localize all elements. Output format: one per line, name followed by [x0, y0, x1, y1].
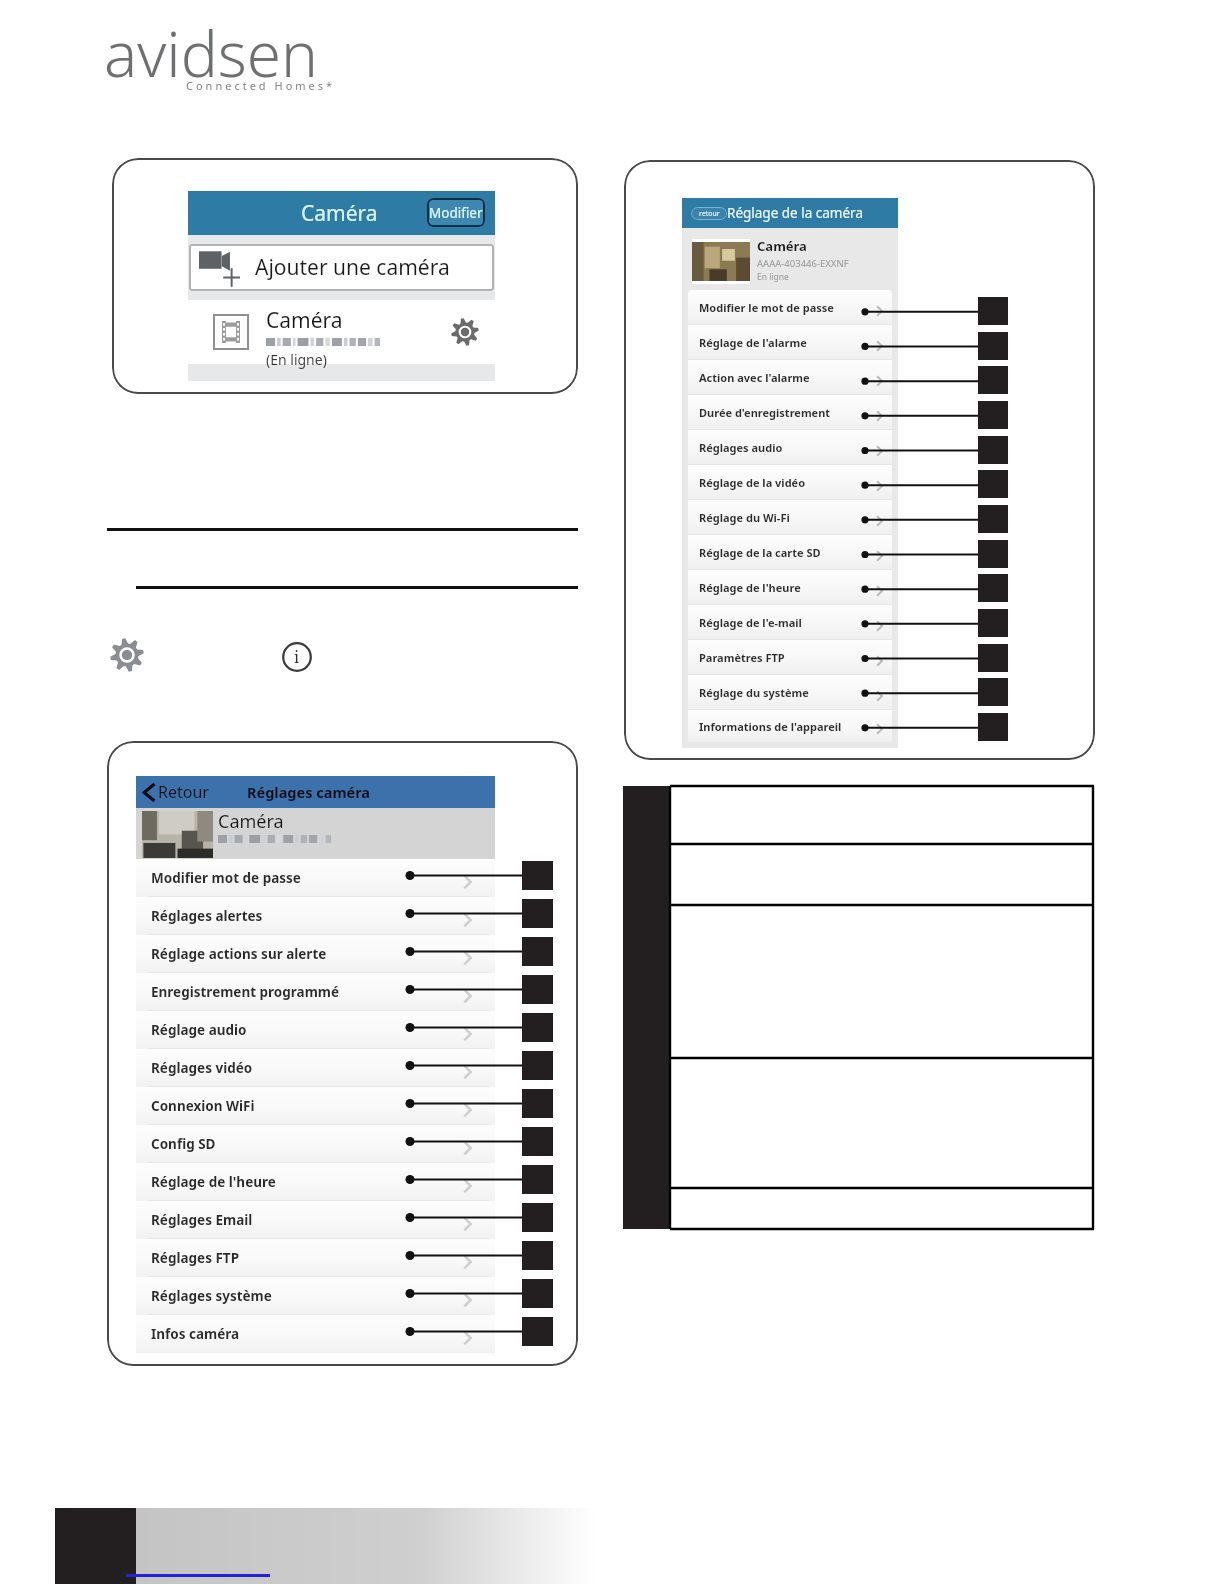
staticText: Réglage du système — [699, 685, 809, 700]
staticText: Réglages système — [151, 1287, 272, 1305]
staticText: Réglages vidéo — [151, 1059, 253, 1077]
staticText: Réglage audio — [151, 1021, 247, 1039]
button[interactable]: Caméra — [188, 300, 495, 364]
button[interactable]: Infos caméra — [136, 1315, 495, 1353]
button[interactable]: Retour — [136, 776, 495, 808]
staticText: Connected Homes* — [186, 78, 336, 93]
button[interactable]: Réglages Email — [136, 1201, 495, 1239]
button[interactable]: Action avec l'alarme — [688, 360, 892, 395]
staticText: Réglages alertes — [151, 907, 263, 925]
button[interactable]: Durée d'enregistrement — [688, 395, 892, 430]
staticText: Réglages caméra — [247, 782, 371, 802]
button[interactable]: Modifier mot de passe — [136, 859, 495, 897]
staticText: Réglages audio — [699, 440, 783, 455]
staticText: Réglage actions sur alerte — [151, 945, 327, 963]
staticText: (En ligne) — [266, 350, 327, 369]
staticText: Modifier — [429, 204, 483, 222]
staticText: Caméra — [218, 809, 284, 834]
button[interactable]: retour — [682, 198, 898, 228]
button[interactable]: Réglages FTP — [136, 1239, 495, 1277]
button[interactable]: Caméra — [188, 191, 495, 235]
staticText: Connexion WiFi — [151, 1097, 255, 1115]
staticText: Retour — [158, 781, 209, 803]
staticText: Réglage de la carte SD — [699, 545, 821, 560]
staticText: Caméra — [266, 306, 343, 335]
staticText: Réglage du Wi-Fi — [699, 510, 790, 525]
staticText: Réglage de l'heure — [151, 1173, 276, 1191]
staticText: Paramètres FTP — [699, 650, 785, 665]
button[interactable]: Réglages système — [136, 1277, 495, 1315]
staticText: Réglages FTP — [151, 1249, 240, 1267]
button[interactable]: Config SD — [136, 1125, 495, 1163]
staticText: Réglage de la caméra — [727, 204, 863, 222]
staticText: Réglage de l'alarme — [699, 335, 807, 350]
button[interactable]: Ajouter une caméra — [189, 244, 494, 291]
staticText: Modifier mot de passe — [151, 869, 301, 887]
staticText: Informations de l'appareil — [699, 719, 842, 734]
staticText: Réglages Email — [151, 1211, 253, 1229]
staticText: Ajouter une caméra — [255, 253, 450, 282]
staticText: Réglage de l'heure — [699, 580, 801, 595]
staticText: Enregistrement programmé — [151, 983, 340, 1001]
button[interactable]: Réglage de la vidéo — [688, 465, 892, 500]
button[interactable]: Réglage actions sur alerte — [136, 935, 495, 973]
button[interactable]: Réglage du Wi-Fi — [688, 500, 892, 535]
staticText: retour — [699, 209, 720, 219]
staticText: Caméra — [301, 199, 378, 228]
staticText: En ligne — [757, 271, 789, 283]
button[interactable]: Paramètres FTP — [688, 640, 892, 675]
button[interactable]: Modifier le mot de passe — [688, 290, 892, 325]
staticText: Modifier le mot de passe — [699, 300, 834, 315]
button[interactable]: Settings — [110, 638, 144, 672]
button[interactable]: Réglage de la carte SD — [688, 535, 892, 570]
button[interactable]: Réglages alertes — [136, 897, 495, 935]
button[interactable]: Réglages audio — [688, 430, 892, 465]
staticText: i — [294, 646, 300, 668]
button[interactable]: Réglage de l'heure — [688, 570, 892, 605]
staticText: avidsen — [104, 11, 318, 95]
button[interactable]: Réglage de l'e-mail — [688, 605, 892, 640]
button[interactable]: Modifier — [427, 198, 485, 227]
button[interactable]: Enregistrement programmé — [136, 973, 495, 1011]
button[interactable]: Information — [282, 642, 312, 672]
button[interactable]: Réglage de l'alarme — [688, 325, 892, 360]
staticText: Config SD — [151, 1135, 216, 1153]
button[interactable]: Réglages vidéo — [136, 1049, 495, 1087]
button[interactable]: Informations de l'appareil — [688, 710, 892, 742]
staticText: AAAA-403446-EXXNF — [757, 257, 849, 270]
staticText: Action avec l'alarme — [699, 370, 810, 385]
staticText: Réglage de la vidéo — [699, 475, 806, 490]
button[interactable]: Réglage du système — [688, 675, 892, 710]
button[interactable]: Réglage de l'heure — [136, 1163, 495, 1201]
button[interactable]: Connexion WiFi — [136, 1087, 495, 1125]
staticText: Réglage de l'e-mail — [699, 615, 802, 630]
button[interactable]: Réglage audio — [136, 1011, 495, 1049]
staticText: Infos caméra — [151, 1325, 240, 1343]
button[interactable]: Camera settings — [451, 318, 479, 346]
staticText: Durée d'enregistrement — [699, 405, 831, 420]
staticText: Caméra — [757, 237, 807, 255]
